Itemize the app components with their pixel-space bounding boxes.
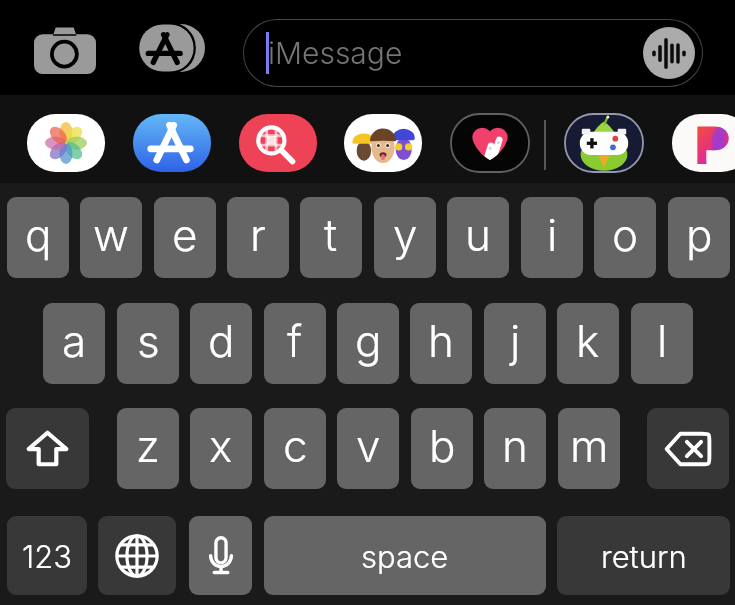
staticText: x <box>209 419 233 472</box>
staticText: return <box>601 538 687 576</box>
button[interactable]: Dictation <box>189 516 252 595</box>
button[interactable]: Take photo <box>22 18 108 78</box>
staticText: l <box>657 314 668 367</box>
button[interactable]: Pandora <box>670 112 735 174</box>
button[interactable]: Digital Touch <box>449 112 531 174</box>
button[interactable]: s <box>117 303 179 384</box>
staticText: iMessage <box>268 35 403 71</box>
staticText: v <box>356 419 381 472</box>
button[interactable]: q <box>7 197 69 278</box>
button[interactable]: c <box>264 408 326 489</box>
staticText: n <box>502 419 528 472</box>
button[interactable]: m <box>558 408 620 489</box>
staticText: o <box>612 208 639 261</box>
staticText: d <box>208 314 235 367</box>
button[interactable]: Image search <box>237 112 319 174</box>
staticText: y <box>393 208 418 261</box>
button[interactable]: o <box>594 197 656 278</box>
button[interactable]: w <box>80 197 142 278</box>
staticText: w <box>93 208 129 261</box>
button[interactable]: Photos <box>25 112 107 174</box>
button[interactable]: n <box>484 408 546 489</box>
button[interactable]: space <box>264 516 546 595</box>
button[interactable]: 123 <box>7 516 87 595</box>
staticText: k <box>576 314 600 367</box>
button[interactable]: Game Pigeon <box>563 112 645 174</box>
staticText: j <box>510 314 521 367</box>
button[interactable]: return <box>557 516 730 595</box>
staticText: z <box>136 419 160 472</box>
staticText: q <box>25 208 52 261</box>
staticText: m <box>570 419 609 472</box>
button[interactable]: t <box>300 197 362 278</box>
staticText: e <box>172 208 198 261</box>
button[interactable]: Backspace <box>647 408 729 489</box>
button[interactable]: l <box>631 303 693 384</box>
staticText: s <box>137 314 160 367</box>
button[interactable]: u <box>447 197 509 278</box>
staticText: g <box>355 314 382 367</box>
staticText: h <box>428 314 454 367</box>
staticText: c <box>283 419 308 472</box>
staticText: t <box>324 208 338 261</box>
button[interactable]: Next keyboard <box>98 516 176 595</box>
staticText: b <box>429 419 456 472</box>
staticText: 123 <box>22 538 73 576</box>
button[interactable]: g <box>337 303 399 384</box>
staticText: f <box>287 314 303 367</box>
button[interactable]: iMessage <box>243 19 703 87</box>
button[interactable]: k <box>557 303 619 384</box>
staticText: a <box>62 314 87 367</box>
button[interactable]: z <box>117 408 179 489</box>
staticText: u <box>465 208 491 261</box>
button[interactable]: v <box>337 408 399 489</box>
staticText: i <box>547 208 558 261</box>
button[interactable]: App Store <box>131 112 213 174</box>
staticText: r <box>250 208 266 261</box>
button[interactable]: Record audio message <box>643 27 695 79</box>
button[interactable]: f <box>264 303 326 384</box>
button[interactable]: i <box>521 197 583 278</box>
button[interactable]: d <box>190 303 252 384</box>
button[interactable]: Shift <box>6 408 89 489</box>
staticText: p <box>686 208 713 261</box>
button[interactable]: r <box>227 197 289 278</box>
button[interactable]: e <box>154 197 216 278</box>
button[interactable]: a <box>43 303 105 384</box>
button[interactable]: y <box>374 197 436 278</box>
button[interactable]: b <box>411 408 473 489</box>
button[interactable]: p <box>668 197 730 278</box>
button[interactable]: j <box>484 303 546 384</box>
button[interactable]: x <box>190 408 252 489</box>
button[interactable]: Apps <box>128 18 212 78</box>
button[interactable]: h <box>410 303 472 384</box>
staticText: space <box>361 538 449 576</box>
button[interactable]: Memoji <box>342 112 424 174</box>
